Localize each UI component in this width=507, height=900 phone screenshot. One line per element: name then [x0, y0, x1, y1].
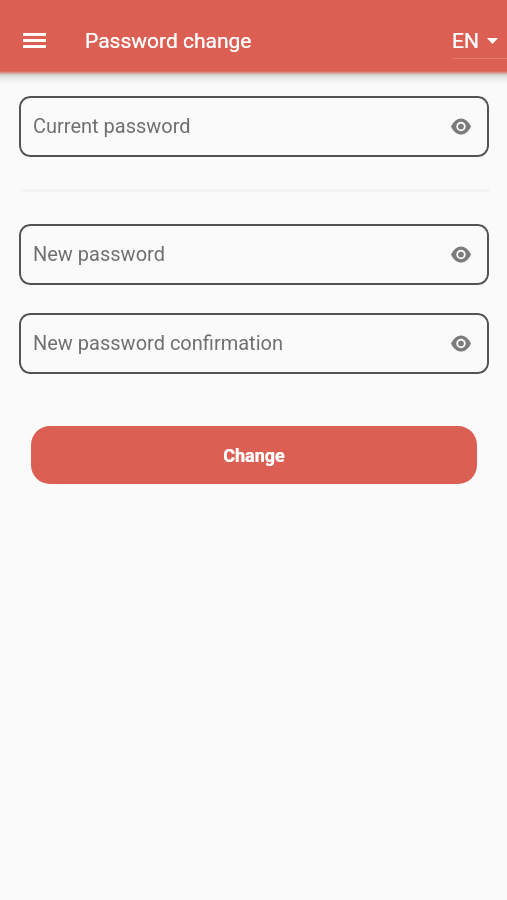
staticText: Password change	[85, 29, 252, 54]
button[interactable]: New password confirmation	[19, 313, 489, 374]
button[interactable]: Change	[31, 426, 477, 484]
button[interactable]: Current password	[19, 96, 489, 157]
staticText: Current password	[33, 114, 191, 137]
staticText: New password	[33, 242, 165, 265]
button[interactable]: Show password	[435, 224, 486, 285]
button[interactable]: Menu	[12, 18, 57, 63]
button[interactable]: Show password	[435, 313, 486, 374]
button[interactable]: New password	[19, 224, 489, 285]
button[interactable]: EN	[441, 20, 507, 63]
button[interactable]: Show password	[435, 96, 486, 157]
staticText: Change	[223, 445, 285, 466]
staticText: New password confirmation	[33, 331, 283, 354]
staticText: EN	[452, 29, 479, 54]
